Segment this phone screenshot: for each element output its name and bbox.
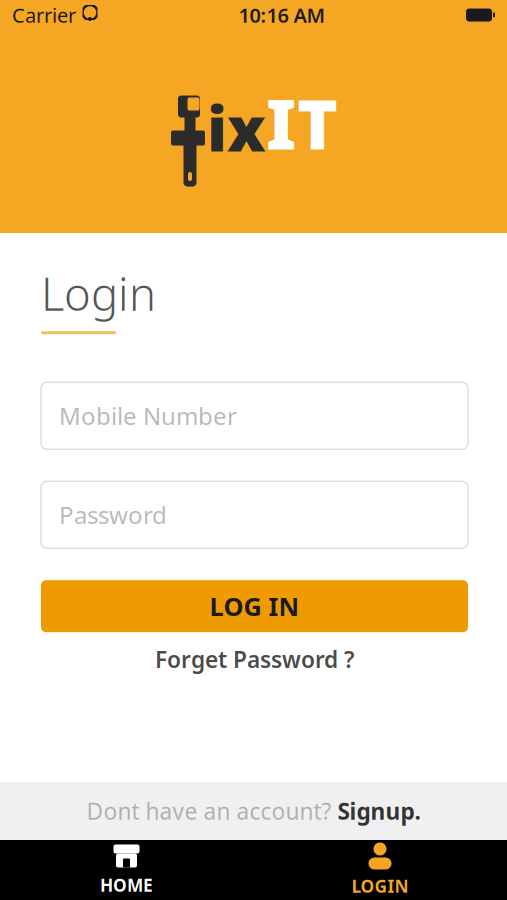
- button[interactable]: HOME: [0, 840, 253, 900]
- staticText: 10:16 AM: [238, 2, 325, 28]
- staticText: Signup.: [337, 796, 420, 826]
- staticText: HOME: [100, 873, 153, 896]
- button[interactable]: LOG IN: [41, 580, 468, 632]
- staticText: Carrier: [12, 2, 76, 28]
- staticText: Dont have an account?: [86, 796, 337, 826]
- staticText: ix: [207, 87, 266, 168]
- button[interactable]: LOGIN: [253, 840, 507, 900]
- staticText: LOG IN: [209, 589, 299, 623]
- button[interactable]: Dont have an account?: [0, 782, 507, 840]
- staticText: IT: [266, 76, 338, 169]
- staticText: Password: [59, 499, 167, 531]
- staticText: Login: [41, 263, 156, 323]
- staticText: LOGIN: [351, 874, 408, 897]
- staticText: Forget Password ?: [155, 644, 354, 674]
- staticText: Mobile Number: [59, 400, 237, 432]
- button[interactable]: Forget Password ?: [41, 644, 468, 674]
